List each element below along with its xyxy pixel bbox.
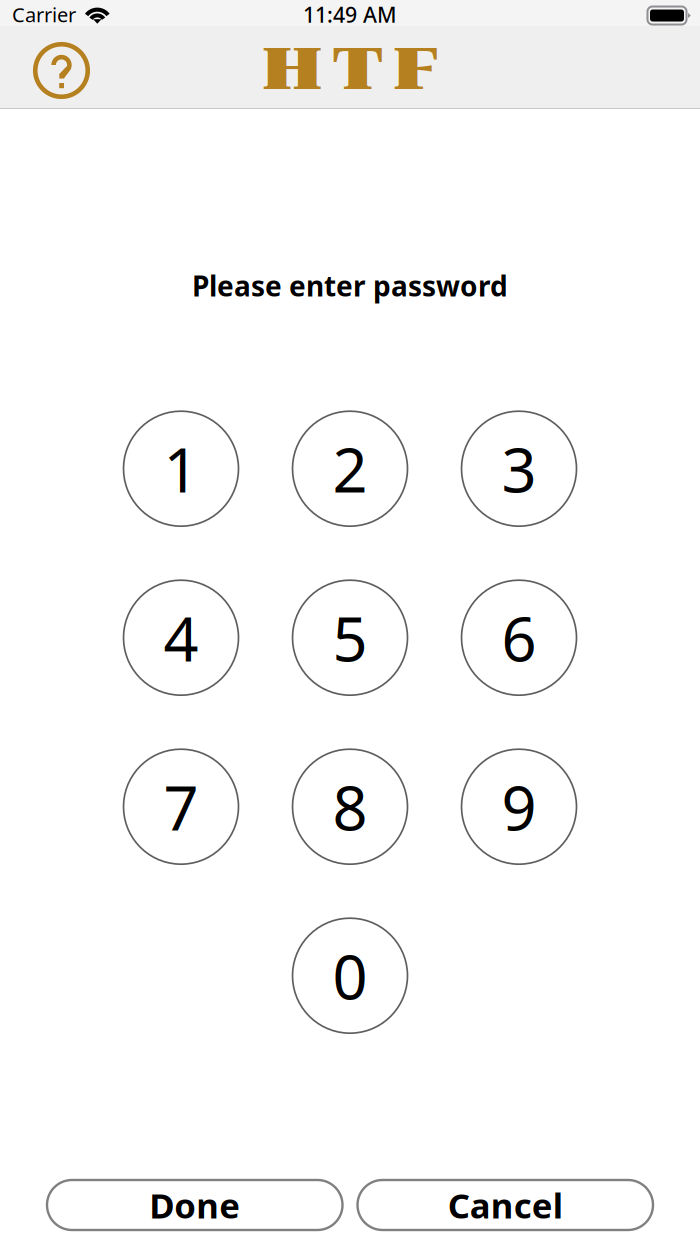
staticText: 9: [501, 766, 536, 847]
button[interactable]: 1: [123, 411, 238, 526]
staticText: HTF: [262, 35, 437, 103]
staticText: Please enter password: [192, 267, 508, 304]
button[interactable]: 4: [123, 580, 238, 695]
button[interactable]: Done: [47, 1180, 342, 1230]
button[interactable]: 0: [292, 918, 407, 1033]
button[interactable]: 6: [461, 580, 576, 695]
button[interactable]: 3: [461, 411, 576, 526]
staticText: 1: [163, 428, 198, 509]
staticText: 5: [332, 597, 367, 678]
button[interactable]: Help: [33, 42, 90, 99]
staticText: 11:49 AM: [303, 0, 397, 29]
staticText: Done: [149, 1182, 240, 1228]
staticText: 3: [501, 428, 536, 509]
staticText: 4: [163, 597, 198, 678]
staticText: 6: [501, 597, 536, 678]
staticText: Cancel: [448, 1182, 563, 1228]
staticText: 8: [332, 766, 367, 847]
staticText: 7: [163, 766, 198, 847]
staticText: 0: [332, 935, 367, 1016]
button[interactable]: 2: [292, 411, 407, 526]
staticText: 2: [332, 428, 367, 509]
staticText: Carrier: [12, 1, 76, 28]
button[interactable]: 5: [292, 580, 407, 695]
button[interactable]: 7: [123, 749, 238, 864]
button[interactable]: 9: [461, 749, 576, 864]
button[interactable]: 8: [292, 749, 407, 864]
button[interactable]: Cancel: [357, 1180, 653, 1230]
